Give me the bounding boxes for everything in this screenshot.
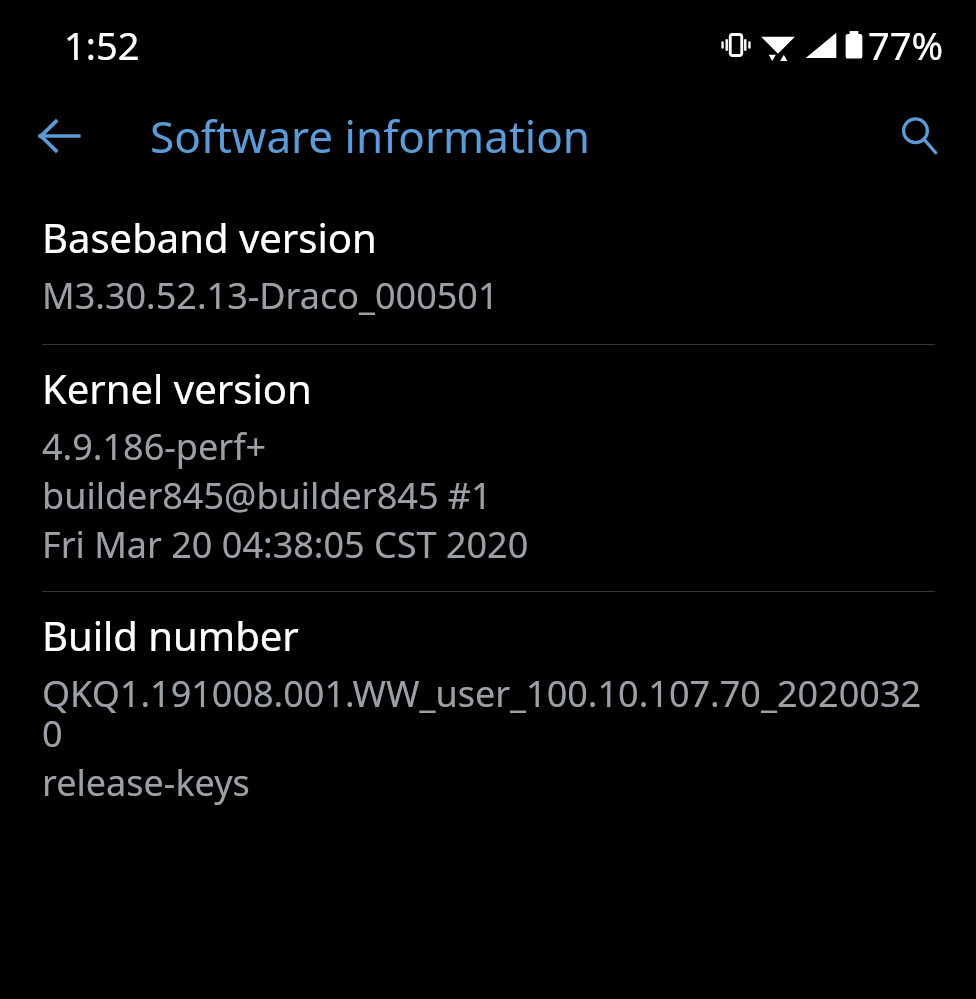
staticText: 4.9.186-perf+	[42, 422, 267, 471]
staticText: Kernel version	[42, 361, 312, 415]
staticText: 77%	[868, 19, 944, 71]
button[interactable]: Search	[882, 99, 956, 173]
button[interactable]: Build number	[0, 608, 976, 807]
button[interactable]: Kernel version	[0, 361, 976, 569]
staticText: M3.30.52.13-Draco_000501	[42, 271, 499, 320]
staticText: Fri Mar 20 04:38:05 CST 2020	[42, 520, 529, 569]
staticText: Build number	[42, 608, 299, 662]
staticText: release-keys	[42, 758, 250, 807]
button[interactable]: Baseband version	[0, 210, 976, 320]
staticText: 1:52	[64, 19, 140, 71]
staticText: Software information	[150, 106, 590, 166]
staticText: QKQ1.191008.001.WW_user_100.10.107.70_20…	[42, 669, 936, 758]
staticText: builder845@builder845 #1	[42, 471, 492, 520]
button[interactable]: Navigate up	[22, 99, 96, 173]
staticText: Baseband version	[42, 210, 377, 264]
